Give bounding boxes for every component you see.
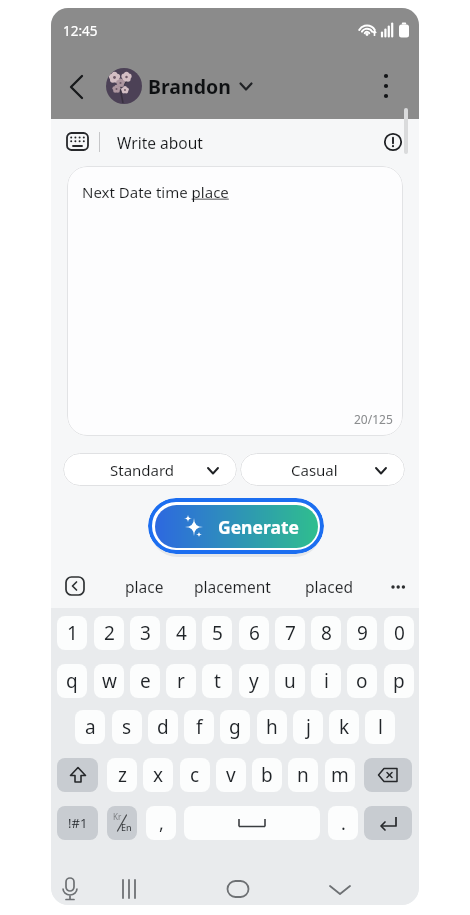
button[interactable] xyxy=(364,758,412,792)
button[interactable]: r xyxy=(166,664,196,698)
button[interactable]: place xyxy=(114,574,174,599)
button[interactable] xyxy=(373,68,399,104)
staticText: h xyxy=(266,714,278,740)
staticText: g xyxy=(229,714,241,740)
staticText: place xyxy=(125,576,164,597)
button[interactable] xyxy=(223,874,253,904)
button[interactable] xyxy=(325,874,355,904)
button[interactable]: Kr xyxy=(107,806,137,840)
staticText: placed xyxy=(305,576,353,597)
staticText: Generate xyxy=(218,515,299,539)
staticText: Casual xyxy=(291,460,338,480)
button[interactable]: f xyxy=(184,710,214,744)
button[interactable]: Next Date time place xyxy=(67,166,403,436)
button[interactable] xyxy=(65,130,91,154)
button[interactable] xyxy=(63,72,93,102)
button[interactable]: o xyxy=(347,664,377,698)
staticText: . xyxy=(341,811,346,836)
staticText: Standard xyxy=(110,460,175,480)
button[interactable]: u xyxy=(275,664,305,698)
staticText: t xyxy=(214,668,221,694)
button[interactable]: t xyxy=(202,664,232,698)
staticText: Write about xyxy=(117,132,203,153)
button[interactable]: 3 xyxy=(130,616,160,650)
staticText: 4 xyxy=(176,620,187,646)
button[interactable]: b xyxy=(252,758,282,792)
button[interactable]: g xyxy=(220,710,250,744)
staticText: v xyxy=(226,762,236,788)
button[interactable] xyxy=(65,576,85,596)
staticText: b xyxy=(261,762,273,788)
button[interactable]: q xyxy=(57,664,87,698)
button[interactable]: 6 xyxy=(239,616,269,650)
staticText: i xyxy=(324,668,329,694)
staticText: 7 xyxy=(285,620,296,646)
button[interactable]: z xyxy=(107,758,137,792)
staticText: y xyxy=(249,668,259,694)
staticText: 1 xyxy=(67,620,78,646)
button[interactable]: placement xyxy=(191,574,273,599)
staticText: z xyxy=(118,762,127,788)
button[interactable]: s xyxy=(112,710,142,744)
button[interactable]: 5 xyxy=(202,616,232,650)
button[interactable] xyxy=(184,806,320,840)
button[interactable] xyxy=(106,68,142,104)
button[interactable]: 9 xyxy=(347,616,377,650)
button[interactable]: k xyxy=(329,710,359,744)
button[interactable]: 4 xyxy=(166,616,196,650)
staticText: q xyxy=(66,668,78,694)
button[interactable]: v xyxy=(216,758,246,792)
button[interactable] xyxy=(364,806,412,840)
button[interactable]: 2 xyxy=(94,616,124,650)
staticText: , xyxy=(159,811,164,836)
button[interactable] xyxy=(382,131,404,153)
staticText: Brandon xyxy=(148,73,231,100)
button[interactable]: n xyxy=(288,758,318,792)
button[interactable]: h xyxy=(257,710,287,744)
staticText: 20/125 xyxy=(354,411,393,427)
staticText: j xyxy=(306,714,311,740)
button[interactable]: 8 xyxy=(311,616,341,650)
staticText: n xyxy=(297,762,309,788)
staticText: e xyxy=(140,668,151,694)
staticText: r xyxy=(177,668,185,694)
button[interactable]: m xyxy=(325,758,355,792)
staticText: En xyxy=(121,821,132,833)
button[interactable]: Generate xyxy=(148,498,324,554)
button[interactable]: !#1 xyxy=(57,806,98,840)
staticText: 3 xyxy=(140,620,151,646)
button[interactable]: d xyxy=(148,710,178,744)
button[interactable]: 7 xyxy=(275,616,305,650)
button[interactable]: c xyxy=(180,758,210,792)
staticText: 9 xyxy=(357,620,368,646)
button[interactable] xyxy=(57,758,98,792)
button[interactable]: y xyxy=(239,664,269,698)
staticText: w xyxy=(102,668,117,694)
button[interactable]: w xyxy=(94,664,124,698)
staticText: s xyxy=(122,714,132,740)
button[interactable] xyxy=(55,874,85,904)
staticText: Kr xyxy=(113,811,122,822)
staticText: p xyxy=(393,668,405,694)
button[interactable]: p xyxy=(384,664,414,698)
button[interactable]: l xyxy=(365,710,395,744)
button[interactable]: j xyxy=(293,710,323,744)
staticText: 6 xyxy=(249,620,260,646)
button[interactable]: i xyxy=(311,664,341,698)
staticText: o xyxy=(356,668,368,694)
button[interactable] xyxy=(116,874,146,904)
button[interactable]: 0 xyxy=(384,616,414,650)
button[interactable] xyxy=(387,573,413,599)
button[interactable]: Casual xyxy=(240,453,405,486)
button[interactable]: Standard xyxy=(63,453,237,486)
button[interactable]: , xyxy=(146,806,176,840)
button[interactable]: a xyxy=(75,710,105,744)
staticText: 8 xyxy=(321,620,332,646)
staticText: 5 xyxy=(212,620,223,646)
staticText: l xyxy=(378,714,383,740)
button[interactable]: . xyxy=(328,806,358,840)
button[interactable]: e xyxy=(130,664,160,698)
button[interactable]: x xyxy=(143,758,173,792)
button[interactable]: placed xyxy=(297,574,361,599)
button[interactable]: 1 xyxy=(57,616,87,650)
